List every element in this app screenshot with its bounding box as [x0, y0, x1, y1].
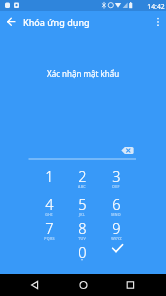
staticText: ABC	[78, 184, 86, 189]
staticText: TUV	[78, 236, 86, 241]
staticText: MNO	[111, 212, 121, 217]
staticText: GHI	[45, 212, 53, 217]
staticText: Xác nhận mật khẩu	[47, 68, 120, 79]
staticText: 3	[112, 166, 121, 186]
staticText: 14:42	[147, 2, 165, 11]
staticText: 2	[78, 166, 87, 186]
staticText: 0	[78, 242, 87, 262]
staticText: JKL	[79, 212, 85, 217]
staticText: WXYZ	[111, 236, 122, 241]
staticText: PQRS	[44, 236, 55, 241]
staticText: 8	[78, 218, 87, 238]
staticText: 9	[112, 218, 121, 238]
staticText: DEF	[112, 184, 120, 189]
staticText: 6	[112, 194, 121, 214]
staticText: 5	[78, 194, 87, 214]
staticText: 4	[45, 194, 54, 214]
staticText: 1	[45, 166, 54, 186]
staticText: 7	[45, 218, 54, 238]
staticText: Khóa ứng dụng	[23, 16, 90, 28]
